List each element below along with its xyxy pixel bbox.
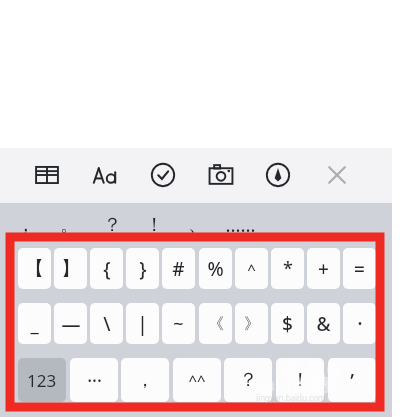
button[interactable]: = <box>343 248 376 289</box>
staticText: ^^ <box>188 370 206 390</box>
staticText: 123 <box>27 369 57 392</box>
staticText: \ <box>103 311 111 337</box>
button[interactable]: ’ <box>328 358 376 402</box>
button[interactable]: ^ <box>235 248 268 289</box>
button[interactable]: 【 <box>18 248 51 289</box>
button[interactable]: { <box>90 248 123 289</box>
staticText: _ <box>30 311 39 337</box>
staticText: ~ <box>173 311 184 336</box>
button[interactable]: Font <box>87 157 123 193</box>
staticText: 《 <box>208 314 224 334</box>
button[interactable]: # <box>162 248 195 289</box>
button[interactable]: ？ <box>224 358 272 402</box>
staticText: $ <box>282 311 293 337</box>
button[interactable]: % <box>199 248 232 289</box>
staticText: ？ <box>239 368 258 392</box>
staticText: | <box>137 311 148 337</box>
staticText: · <box>357 310 363 337</box>
button[interactable]: 、 <box>178 210 216 240</box>
staticText: ！ <box>145 213 164 237</box>
staticText: jingyan.baidu.com <box>256 392 326 403</box>
button[interactable]: $ <box>271 303 304 344</box>
button[interactable]: 】 <box>54 248 87 289</box>
staticText: 、 <box>188 213 207 237</box>
button[interactable]: ~ <box>162 303 195 344</box>
button[interactable]: · <box>343 303 376 344</box>
staticText: ， <box>136 369 154 392</box>
staticText: ， <box>16 213 35 237</box>
button[interactable]: } <box>126 248 159 289</box>
button[interactable]: ！ <box>276 358 324 402</box>
button[interactable]: Confirm <box>145 157 181 193</box>
button[interactable]: ^^ <box>173 358 221 402</box>
staticText: % <box>207 256 224 282</box>
button[interactable]: ··· <box>70 358 118 402</box>
button[interactable]: Camera <box>203 157 239 193</box>
staticText: = <box>354 256 365 282</box>
button[interactable]: | <box>126 303 159 344</box>
staticText: 》 <box>244 314 260 334</box>
button[interactable]: _ <box>18 303 51 344</box>
staticText: ^ <box>247 259 256 279</box>
button[interactable]: * <box>271 248 304 289</box>
button[interactable]: …… <box>221 210 259 240</box>
staticText: # <box>172 256 185 282</box>
staticText: 。 <box>60 213 79 237</box>
staticText: Baidu经验 <box>252 372 340 397</box>
button[interactable]: Table <box>29 157 65 193</box>
button[interactable]: Close <box>319 157 355 193</box>
button[interactable]: 。 <box>50 210 88 240</box>
button[interactable]: Pen <box>260 157 296 193</box>
staticText: { <box>103 256 111 282</box>
staticText: & <box>316 311 331 337</box>
button[interactable]: 《 <box>199 303 232 344</box>
staticText: ’ <box>350 367 354 394</box>
staticText: ！ <box>291 368 310 392</box>
button[interactable]: + <box>307 248 340 289</box>
staticText: + <box>318 256 329 282</box>
staticText: — <box>61 311 81 337</box>
button[interactable]: ？ <box>93 210 131 240</box>
button[interactable]: & <box>307 303 340 344</box>
button[interactable]: ， <box>6 210 44 240</box>
staticText: ？ <box>103 213 122 237</box>
button[interactable]: ， <box>121 358 169 402</box>
button[interactable]: \ <box>90 303 123 344</box>
staticText: * <box>283 256 293 281</box>
button[interactable]: 123 <box>18 358 66 402</box>
staticText: ··· <box>87 368 102 393</box>
button[interactable]: ！ <box>135 210 173 240</box>
staticText: …… <box>225 212 256 238</box>
button[interactable]: 》 <box>235 303 268 344</box>
staticText: 【 <box>25 257 44 281</box>
staticText: 】 <box>61 257 80 281</box>
button[interactable]: — <box>54 303 87 344</box>
staticText: } <box>139 256 147 282</box>
